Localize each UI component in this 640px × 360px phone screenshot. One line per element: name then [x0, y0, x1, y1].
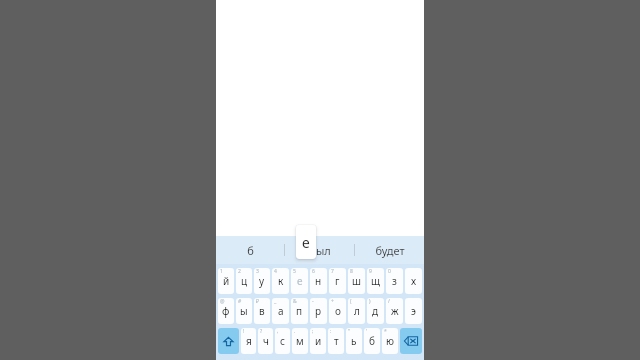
staticText: 3 [256, 268, 259, 275]
staticText: . [294, 328, 296, 335]
button[interactable]: & [291, 298, 308, 324]
staticText: н [315, 274, 322, 288]
button[interactable]: 5 [291, 268, 308, 294]
staticText: 9 [369, 268, 372, 275]
staticText: т [334, 334, 339, 348]
staticText: ы [240, 304, 248, 318]
staticText: * [384, 328, 387, 335]
staticText: щ [371, 274, 380, 288]
staticText: _ [274, 298, 277, 305]
staticText: а [278, 304, 284, 318]
staticText: е [297, 274, 303, 288]
staticText: й [223, 274, 230, 288]
staticText: р [315, 304, 322, 318]
staticText: б [369, 334, 375, 348]
button[interactable]: - [310, 298, 327, 324]
staticText: о [335, 304, 341, 318]
staticText: ! [243, 328, 245, 335]
button[interactable]: Shift [218, 328, 239, 354]
button[interactable]: 1 [218, 268, 234, 294]
button[interactable]: : [328, 328, 344, 354]
staticText: ; [312, 328, 314, 335]
staticText: 8 [350, 268, 353, 275]
staticText: ь [351, 334, 357, 348]
staticText: ч [263, 334, 269, 348]
staticText: ( [350, 298, 352, 305]
staticText: ж [391, 304, 399, 318]
button[interactable]: б [216, 236, 284, 264]
button[interactable]: + [329, 298, 346, 324]
button[interactable]: " [346, 328, 362, 354]
staticText: х [411, 274, 417, 288]
button[interactable]: # [236, 298, 252, 324]
staticText: , [277, 328, 279, 335]
button[interactable]: 2 [236, 268, 252, 294]
button[interactable]: ! [241, 328, 256, 354]
button[interactable]: был [285, 236, 354, 264]
staticText: ц [241, 274, 248, 288]
staticText: @ [220, 298, 225, 305]
button[interactable]: 6 [310, 268, 327, 294]
staticText: г [335, 274, 340, 288]
button[interactable]: 8 [348, 268, 365, 294]
staticText: " [348, 328, 351, 335]
button[interactable]: 7 [329, 268, 346, 294]
staticText: & [293, 298, 297, 305]
staticText: 1 [220, 268, 223, 275]
staticText: б [247, 243, 254, 258]
button[interactable]: 3 [254, 268, 270, 294]
staticText: ю [386, 334, 394, 348]
staticText: з [392, 274, 397, 288]
button[interactable]: будет [355, 236, 424, 264]
staticText: ф [222, 304, 230, 318]
staticText: ) [369, 298, 371, 305]
button[interactable]: Backspace [400, 328, 422, 354]
button[interactable]: 9 [367, 268, 384, 294]
button[interactable]: ₽ [254, 298, 270, 324]
staticText: у [259, 274, 265, 288]
staticText: 4 [274, 268, 277, 275]
button[interactable]: э [405, 298, 422, 324]
staticText: ₽ [256, 298, 259, 305]
staticText: ? [260, 328, 263, 335]
button[interactable]: ? [258, 328, 273, 354]
button[interactable]: / [386, 298, 403, 324]
button[interactable]: 0 [386, 268, 403, 294]
staticText: 7 [331, 268, 334, 275]
button[interactable]: 4 [272, 268, 289, 294]
button[interactable]: _ [272, 298, 289, 324]
staticText: был [309, 243, 331, 258]
button[interactable]: ( [348, 298, 365, 324]
button[interactable]: * [382, 328, 398, 354]
staticText: ' [366, 328, 368, 335]
staticText: ш [352, 274, 361, 288]
button[interactable]: . [292, 328, 308, 354]
button[interactable]: ; [310, 328, 326, 354]
staticText: будет [375, 243, 405, 258]
staticText: 5 [293, 268, 296, 275]
staticText: д [372, 304, 379, 318]
staticText: / [388, 298, 390, 305]
staticText: м [296, 334, 304, 348]
staticText: - [312, 298, 314, 305]
staticText: э [411, 304, 416, 318]
staticText: # [238, 298, 242, 305]
staticText: с [280, 334, 285, 348]
staticText: : [330, 328, 332, 335]
button[interactable]: ' [364, 328, 380, 354]
button[interactable]: х [405, 268, 422, 294]
staticText: + [331, 298, 334, 305]
staticText: в [259, 304, 265, 318]
button[interactable]: ) [367, 298, 384, 324]
staticText: 6 [312, 268, 315, 275]
staticText: 2 [238, 268, 241, 275]
staticText: л [354, 304, 360, 318]
staticText: я [246, 334, 252, 348]
button[interactable]: @ [218, 298, 234, 324]
staticText: и [315, 334, 322, 348]
button[interactable]: , [275, 328, 290, 354]
staticText: е [302, 233, 310, 252]
staticText: к [278, 274, 284, 288]
staticText: 0 [388, 268, 391, 275]
staticText: п [296, 304, 303, 318]
